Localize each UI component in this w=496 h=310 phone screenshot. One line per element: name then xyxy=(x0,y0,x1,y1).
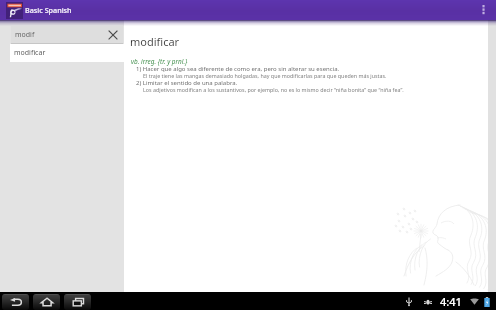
staticText: Los adjetivos modifican a los sustantivo… xyxy=(143,86,404,93)
button[interactable]: Home xyxy=(33,294,60,310)
button[interactable]: More options xyxy=(474,0,493,20)
staticText: El traje tiene las mangas demasiado holg… xyxy=(143,72,387,79)
staticText: modificar xyxy=(14,48,46,58)
button[interactable]: Recent apps xyxy=(64,294,91,310)
button[interactable]: Back xyxy=(2,294,29,310)
button[interactable]: Clear search xyxy=(105,27,121,43)
staticText: 4:41 xyxy=(440,294,462,309)
staticText: 1) Hacer que algo sea diferente de como … xyxy=(136,65,340,73)
button[interactable]: modif xyxy=(11,26,123,43)
staticText: modif xyxy=(15,30,35,40)
staticText: modificar xyxy=(130,34,180,49)
staticText: Basic Spanish xyxy=(25,5,72,15)
staticText: vb. irreg. {tr. y prnl.} xyxy=(131,57,188,66)
staticText: 2) Limitar el sentido de una palabra. xyxy=(136,79,238,87)
button[interactable]: modificar xyxy=(10,44,124,62)
